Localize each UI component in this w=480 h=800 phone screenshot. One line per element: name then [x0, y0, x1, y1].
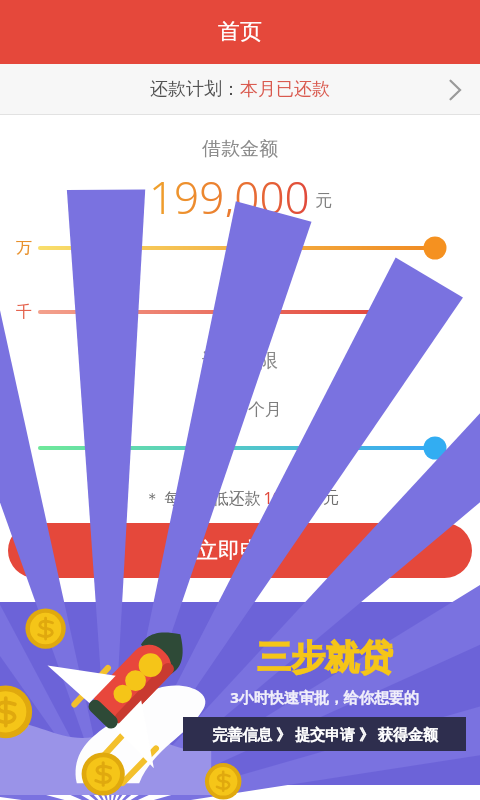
staticText: 立即申请	[196, 537, 284, 565]
staticText: 还款计划：	[150, 78, 240, 101]
staticText: 元	[323, 488, 339, 508]
staticText: 3小时快速审批，给你想要的	[230, 687, 419, 707]
button[interactable]: 千	[0, 299, 480, 325]
staticText: 完善信息 》 提交申请 》 获得金额	[212, 724, 438, 744]
staticText: 199,000	[149, 167, 310, 217]
button[interactable]	[0, 435, 480, 461]
staticText: 万	[16, 238, 32, 258]
staticText: ＊ 每月最低还款	[142, 487, 263, 509]
button[interactable]: 三步就贷 活动横幅	[0, 602, 480, 785]
button[interactable]: 万	[0, 235, 480, 261]
staticText: 三步就贷	[257, 636, 393, 679]
staticText: 元	[315, 190, 332, 211]
staticText: 首页	[218, 18, 262, 46]
button[interactable]: 还款计划：	[0, 64, 480, 115]
other: 打开还款计划	[448, 79, 462, 101]
button[interactable]: 立即申请	[8, 523, 472, 578]
staticText: 还款期限	[202, 349, 278, 373]
staticText: 本月已还款	[240, 78, 330, 101]
staticText: 千	[16, 302, 32, 322]
staticText: 24	[199, 377, 245, 425]
staticText: 1023.34	[263, 487, 323, 509]
staticText: 借款金额	[202, 137, 278, 161]
staticText: 个月	[248, 399, 282, 420]
